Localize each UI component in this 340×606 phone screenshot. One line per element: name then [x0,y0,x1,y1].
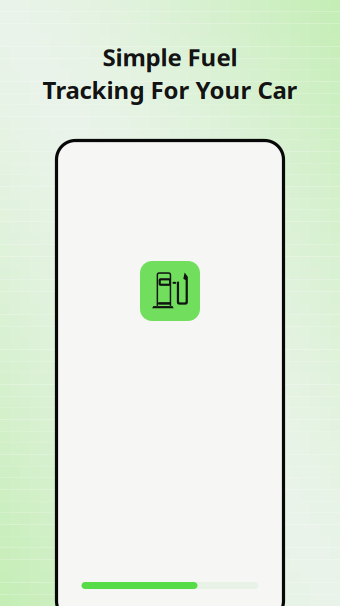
staticText: Tracking For Your Car [42,74,297,106]
staticText: Simple Fuel [102,41,237,73]
